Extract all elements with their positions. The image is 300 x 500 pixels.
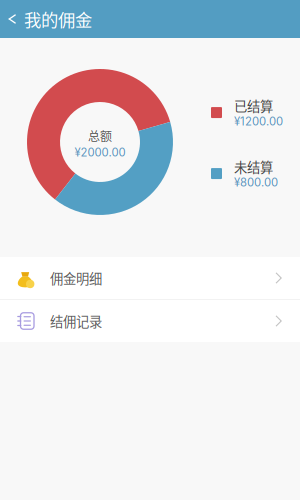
staticText: 未结算	[234, 159, 273, 174]
button[interactable]: Back	[0, 0, 92, 38]
staticText: ¥2000.00	[74, 147, 125, 158]
staticText: 佣金明细	[50, 270, 102, 286]
staticText: 我的佣金	[24, 9, 92, 29]
staticText: ¥800.00	[234, 176, 278, 188]
button[interactable]: 结佣记录	[0, 300, 300, 342]
staticText: ¥1200.00	[234, 115, 283, 127]
button[interactable]: 佣金明细	[0, 257, 300, 299]
staticText: 结佣记录	[50, 313, 102, 329]
staticText: 总额	[88, 129, 112, 143]
staticText: 已结算	[234, 98, 273, 113]
